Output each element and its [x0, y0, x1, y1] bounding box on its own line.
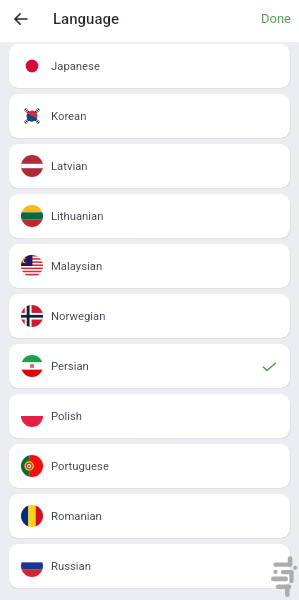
button[interactable]: Korean: [9, 94, 290, 138]
staticText: Malaysian: [51, 260, 103, 273]
staticText: Polish: [51, 410, 83, 423]
button[interactable]: Malaysian: [9, 244, 290, 288]
button[interactable]: Latvian: [9, 144, 290, 188]
staticText: Latvian: [51, 160, 88, 173]
staticText: Romanian: [51, 510, 102, 523]
staticText: Done: [261, 11, 292, 26]
button[interactable]: Japanese: [9, 44, 290, 88]
staticText: Russian: [51, 560, 91, 573]
staticText: Japanese: [51, 60, 100, 73]
staticText: Portuguese: [51, 460, 109, 473]
button[interactable]: Russian: [9, 544, 290, 588]
button[interactable]: Romanian: [9, 494, 290, 538]
staticText: Language: [53, 10, 120, 28]
staticText: Lithuanian: [51, 210, 104, 223]
button[interactable]: Lithuanian: [9, 194, 290, 238]
button[interactable]: Done: [249, 3, 299, 34]
button[interactable]: Back: [9, 7, 33, 31]
button[interactable]: Polish: [9, 394, 290, 438]
button[interactable]: Portuguese: [9, 444, 290, 488]
staticText: Persian: [51, 360, 89, 373]
button[interactable]: Norwegian: [9, 294, 290, 338]
button[interactable]: Persian: [9, 344, 290, 388]
staticText: Norwegian: [51, 310, 106, 323]
staticText: Korean: [51, 110, 87, 123]
